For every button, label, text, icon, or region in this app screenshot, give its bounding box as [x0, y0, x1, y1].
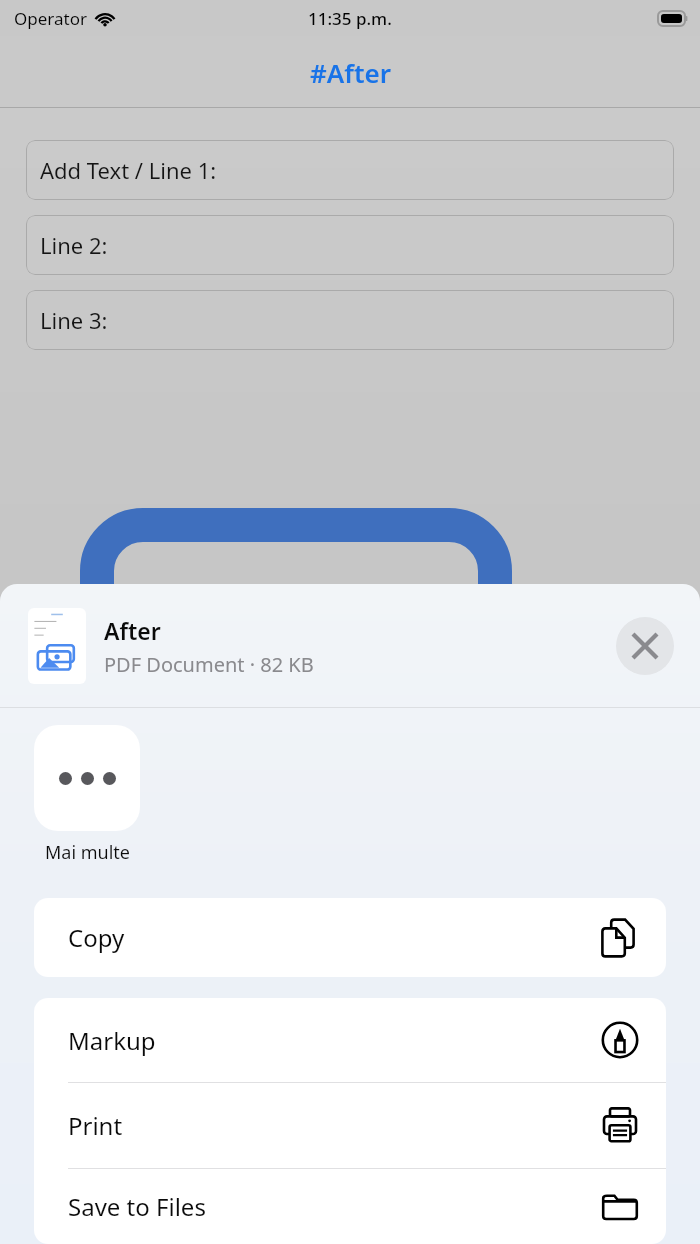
button[interactable]: Close	[616, 617, 674, 675]
other: Save to Files	[600, 1187, 640, 1227]
staticText: After	[104, 615, 161, 646]
staticText: 11:35 p.m.	[308, 7, 392, 30]
other: Copy	[600, 918, 640, 958]
staticText: Save to Files	[68, 1190, 206, 1223]
staticText: #After	[310, 55, 391, 90]
staticText: Add Text / Line 1:	[40, 155, 217, 185]
other: Print	[600, 1106, 640, 1146]
staticText: Line 3:	[40, 305, 108, 335]
button[interactable]: Save to Files	[34, 1169, 666, 1244]
staticText: Operator	[14, 7, 87, 30]
staticText: PDF Document · 82 KB	[104, 651, 314, 678]
other: Markup	[600, 1020, 640, 1060]
button[interactable]: Add Text / Line 1:	[26, 140, 674, 200]
button[interactable]	[34, 725, 140, 831]
staticText: Mai multe	[45, 840, 130, 865]
staticText: Copy	[68, 921, 125, 954]
button[interactable]: Copy	[34, 898, 666, 977]
button[interactable]: Line 2:	[26, 215, 674, 275]
staticText: Print	[68, 1109, 123, 1142]
staticText: Markup	[68, 1024, 156, 1057]
button[interactable]: Markup	[34, 998, 666, 1082]
button[interactable]: Line 3:	[26, 290, 674, 350]
staticText: Line 2:	[40, 230, 108, 260]
button[interactable]: Print	[34, 1083, 666, 1168]
